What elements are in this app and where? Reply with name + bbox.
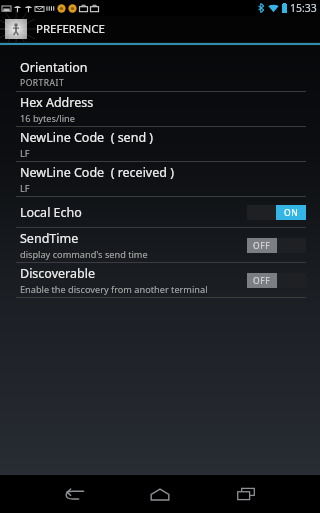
staticText: Discoverable: [20, 265, 95, 282]
button[interactable]: Hex Address: [0, 92, 320, 126]
staticText: 15:33: [290, 1, 317, 15]
staticText: SendTime: [20, 230, 79, 247]
staticText: PORTRAIT: [20, 77, 65, 89]
button[interactable]: SendTime: [0, 228, 320, 262]
button[interactable]: Discoverable: [0, 263, 320, 297]
staticText: Enable the discovery from another termin…: [20, 283, 208, 296]
staticText: LF: [20, 147, 30, 160]
button[interactable]: Back: [45, 475, 103, 513]
staticText: Local Echo: [20, 204, 82, 221]
button[interactable]: Recent apps: [217, 475, 275, 513]
button[interactable]: NewLine Code ( send ): [0, 127, 320, 161]
other: App icon: [5, 19, 27, 39]
button[interactable]: Orientation: [0, 57, 320, 91]
staticText: LF: [20, 182, 30, 195]
staticText: Hex Address: [20, 94, 94, 111]
button[interactable]: Toggle off: [247, 273, 306, 288]
staticText: display command's send time: [20, 248, 148, 261]
staticText: OFF: [253, 275, 271, 287]
button[interactable]: NewLine Code ( received ): [0, 162, 320, 196]
staticText: Orientation: [20, 59, 88, 76]
button[interactable]: Home: [131, 475, 189, 513]
staticText: PREFERENCE: [36, 21, 105, 37]
button[interactable]: App icon: [0, 16, 320, 42]
staticText: NewLine Code ( received ): [20, 164, 174, 181]
staticText: 16 bytes/line: [20, 112, 75, 125]
staticText: ON: [284, 207, 299, 219]
staticText: OFF: [253, 240, 271, 252]
button[interactable]: Toggle on: [247, 205, 306, 220]
staticText: NewLine Code ( send ): [20, 129, 154, 146]
button[interactable]: Local Echo: [0, 197, 320, 227]
button[interactable]: Toggle off: [247, 238, 306, 253]
